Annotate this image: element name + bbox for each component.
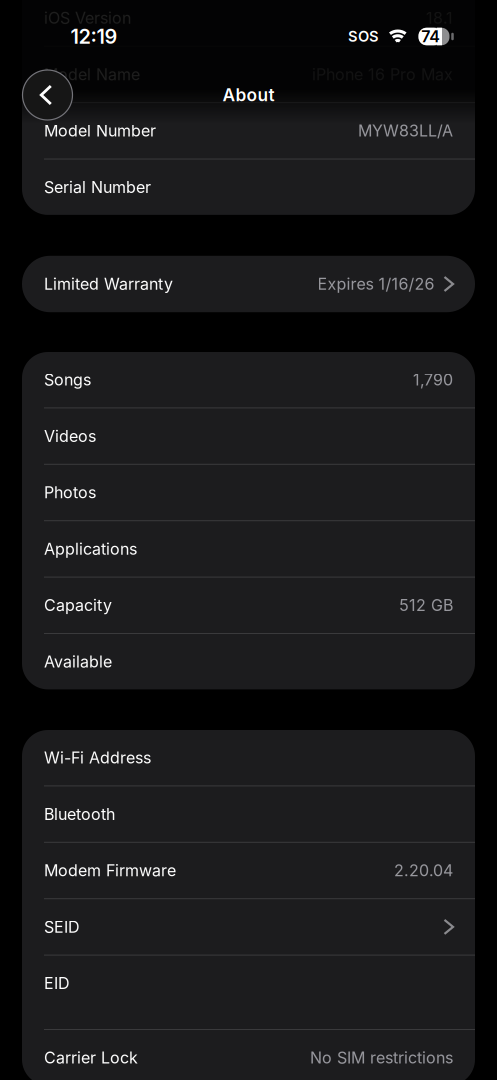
button[interactable]: Capacity — [22, 578, 475, 633]
button[interactable]: Bluetooth — [22, 786, 475, 842]
button[interactable] — [22, 70, 72, 120]
staticText: Applications — [44, 539, 137, 558]
staticText: SEID — [44, 917, 80, 936]
staticText: MYW83LL/A — [358, 121, 453, 140]
staticText: EID — [44, 974, 70, 993]
staticText: About — [222, 85, 274, 105]
staticText: SOS — [348, 28, 379, 45]
staticText: Available — [44, 652, 112, 671]
button[interactable]: Wi-Fi Address — [22, 730, 475, 785]
button[interactable]: Photos — [22, 465, 475, 520]
staticText: Wi-Fi Address — [44, 748, 151, 767]
button[interactable]: Applications — [22, 521, 475, 577]
button[interactable]: iOS Version — [22, 0, 475, 46]
staticText: Expires 1/16/26 — [317, 275, 434, 293]
button[interactable]: Songs — [22, 352, 475, 407]
button[interactable]: Model Name — [22, 47, 475, 102]
button[interactable]: Videos — [22, 408, 475, 464]
button[interactable]: Limited Warranty — [22, 256, 475, 312]
staticText: Serial Number — [44, 178, 151, 197]
button[interactable]: Modem Firmware — [22, 843, 475, 898]
staticText: iPhone 16 Pro Max — [312, 65, 453, 84]
staticText: 18.1 — [426, 9, 453, 27]
staticText: Bluetooth — [44, 805, 115, 824]
staticText: Limited Warranty — [44, 275, 173, 293]
staticText: 2.20.04 — [394, 861, 453, 880]
button[interactable]: Model Number — [22, 103, 475, 158]
button[interactable]: SEID — [22, 899, 475, 955]
staticText: 74 — [421, 27, 440, 46]
staticText: iOS Version — [44, 9, 131, 27]
button[interactable]: Available — [22, 634, 475, 689]
button[interactable]: Carrier Lock — [22, 1030, 475, 1080]
staticText: Videos — [44, 427, 96, 446]
staticText: Carrier Lock — [44, 1048, 138, 1067]
staticText: 12:19 — [70, 25, 117, 48]
button[interactable]: EID — [22, 956, 475, 1029]
staticText: 512 GB — [399, 596, 453, 615]
staticText: Modem Firmware — [44, 861, 176, 880]
staticText: Model Name — [44, 65, 140, 84]
staticText: 1,790 — [413, 370, 453, 389]
staticText: Songs — [44, 370, 91, 389]
staticText: Capacity — [44, 596, 112, 615]
staticText: Model Number — [44, 121, 156, 140]
staticText: Photos — [44, 483, 96, 502]
button[interactable]: Serial Number — [22, 159, 475, 215]
staticText: No SIM restrictions — [310, 1048, 453, 1067]
